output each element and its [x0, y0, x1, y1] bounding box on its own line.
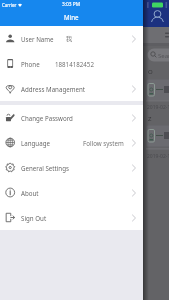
staticText: Mine [64, 13, 79, 21]
staticText: Address Management [21, 85, 86, 93]
staticText: 我 [66, 35, 73, 43]
button[interactable]: Phone [0, 51, 143, 76]
staticText: Follow system [83, 139, 124, 147]
staticText: Language [21, 139, 50, 147]
button[interactable]: Sign Out [0, 205, 143, 230]
button[interactable]: General Settings [0, 155, 143, 180]
staticText: User Name [21, 35, 54, 43]
staticText: Change Password [21, 114, 73, 122]
staticText: 18814182452 [55, 60, 94, 68]
staticText: General Settings [21, 164, 69, 172]
button[interactable]: User Name [0, 26, 143, 51]
button[interactable]: Language [0, 130, 143, 155]
staticText: About [21, 189, 39, 197]
button[interactable]: About [0, 180, 143, 205]
staticText: Phone [21, 60, 40, 68]
staticText: 2019-02-1 [147, 153, 169, 160]
staticText: Sign Out [21, 214, 47, 222]
staticText: Search [158, 52, 169, 60]
staticText: 3:03 PM [62, 1, 81, 8]
button[interactable]: Change Password [0, 105, 143, 130]
button[interactable]: Address Management [0, 76, 143, 101]
staticText: O [148, 68, 153, 76]
staticText: Carrier [2, 2, 17, 8]
staticText: Z [148, 115, 152, 123]
staticText: 2019-02-1 [147, 104, 169, 111]
